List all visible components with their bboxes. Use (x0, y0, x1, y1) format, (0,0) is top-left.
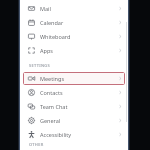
button[interactable]: General (23, 114, 125, 127)
button[interactable]: Meetings (23, 72, 125, 85)
button[interactable]: Whiteboard (23, 30, 125, 43)
staticText: Meetings (40, 75, 118, 82)
staticText: Whiteboard (40, 33, 118, 40)
staticText: Apps (40, 47, 118, 54)
staticText: General (40, 117, 118, 124)
staticText: OTHER (29, 142, 44, 147)
staticText: Accessibility (40, 131, 118, 138)
staticText: Mail (40, 5, 118, 12)
staticText: Calendar (40, 19, 118, 26)
button[interactable]: Contacts (23, 86, 125, 99)
staticText: Contacts (40, 89, 118, 96)
staticText: SETTINGS (29, 63, 51, 68)
button[interactable]: Mail (23, 2, 125, 15)
button[interactable]: Apps (23, 44, 125, 57)
staticText: Team Chat (40, 103, 118, 110)
button[interactable]: Calendar (23, 16, 125, 29)
button[interactable]: Team Chat (23, 100, 125, 113)
button[interactable]: Accessibility (23, 128, 125, 141)
